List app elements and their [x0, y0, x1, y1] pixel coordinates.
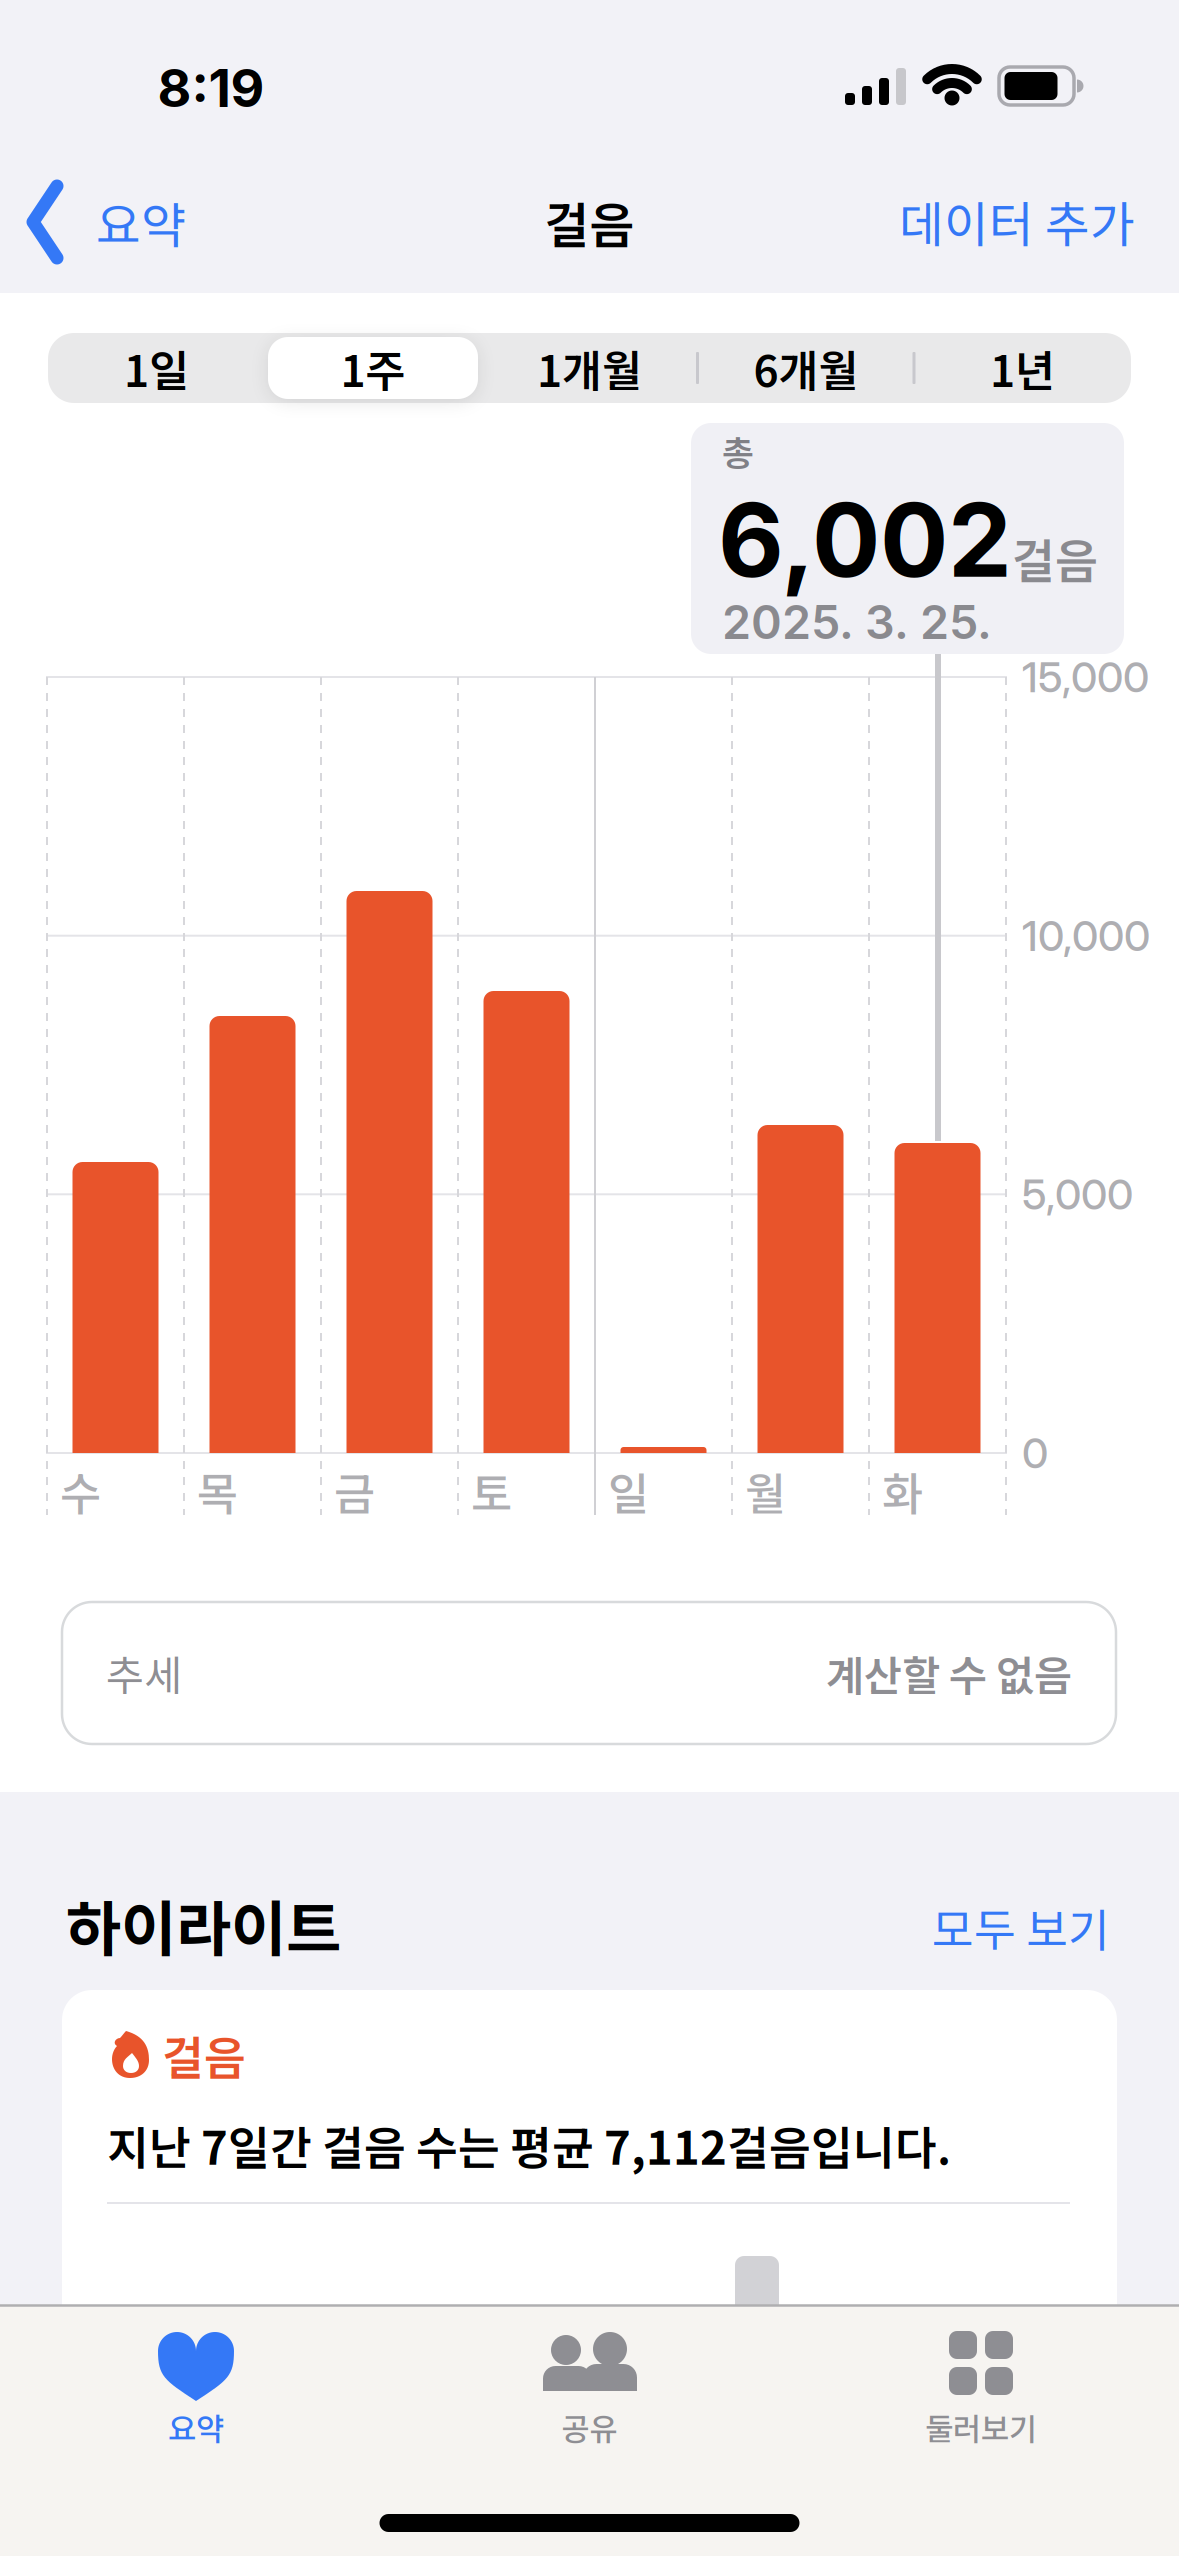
button[interactable]: 뒤로 [26, 181, 206, 261]
staticText: 일 [608, 1459, 649, 1523]
staticText: 걸음 [1012, 524, 1098, 592]
staticText: 금 [334, 1459, 375, 1523]
staticText: 0 [1022, 1428, 1048, 1478]
button[interactable]: 1년 [914, 333, 1130, 403]
staticText: 화 [882, 1459, 923, 1523]
staticText: 추세 [106, 1643, 182, 1703]
staticText: 데이터 추가 [899, 186, 1135, 256]
button[interactable]: 추세 [62, 1602, 1116, 1744]
staticText: 6개월 [753, 337, 858, 399]
staticText: 총 [722, 426, 754, 476]
button[interactable]: 둘러보기 [831, 2320, 1131, 2460]
staticText: 15,000 [1022, 652, 1149, 702]
staticText: 토 [471, 1459, 512, 1523]
staticText: 공유 [561, 2405, 617, 2449]
staticText: 2025. 3. 25. [722, 594, 992, 650]
button[interactable]: 1일 [48, 333, 264, 403]
button[interactable]: 1주 [265, 333, 481, 403]
button[interactable]: 6개월 [698, 333, 914, 403]
staticText: 1주 [340, 337, 405, 399]
button[interactable]: 1개월 [481, 333, 697, 403]
staticText: 요약 [96, 187, 186, 257]
staticText: 1개월 [537, 337, 642, 399]
staticText: 목 [197, 1459, 238, 1523]
staticText: 둘러보기 [925, 2405, 1037, 2449]
staticText: 10,000 [1022, 910, 1150, 961]
button[interactable]: 걸음 [62, 1990, 1117, 2556]
button[interactable]: 데이터 추가 [875, 181, 1135, 261]
button[interactable]: 공유 [439, 2320, 739, 2460]
button[interactable]: 요약 [46, 2320, 346, 2460]
staticText: 수 [60, 1459, 101, 1523]
staticText: 6,002 [718, 479, 1012, 601]
staticText: 1년 [990, 337, 1055, 399]
button[interactable]: 모두 보기 [910, 1892, 1110, 1962]
staticText: 월 [745, 1459, 786, 1523]
staticText: 하이라이트 [66, 1882, 341, 1968]
staticText: 걸음 [544, 187, 634, 257]
staticText: 걸음 [162, 2022, 246, 2088]
staticText: 지난 7일간 걸음 수는 평균 7,112걸음입니다. [107, 2113, 951, 2177]
staticText: 5,000 [1022, 1169, 1133, 1220]
staticText: 모두 보기 [932, 1894, 1110, 1960]
staticText: 8:19 [157, 56, 264, 119]
staticText: 요약 [168, 2405, 224, 2449]
staticText: 계산할 수 없음 [826, 1643, 1072, 1703]
staticText: 1일 [124, 337, 189, 399]
